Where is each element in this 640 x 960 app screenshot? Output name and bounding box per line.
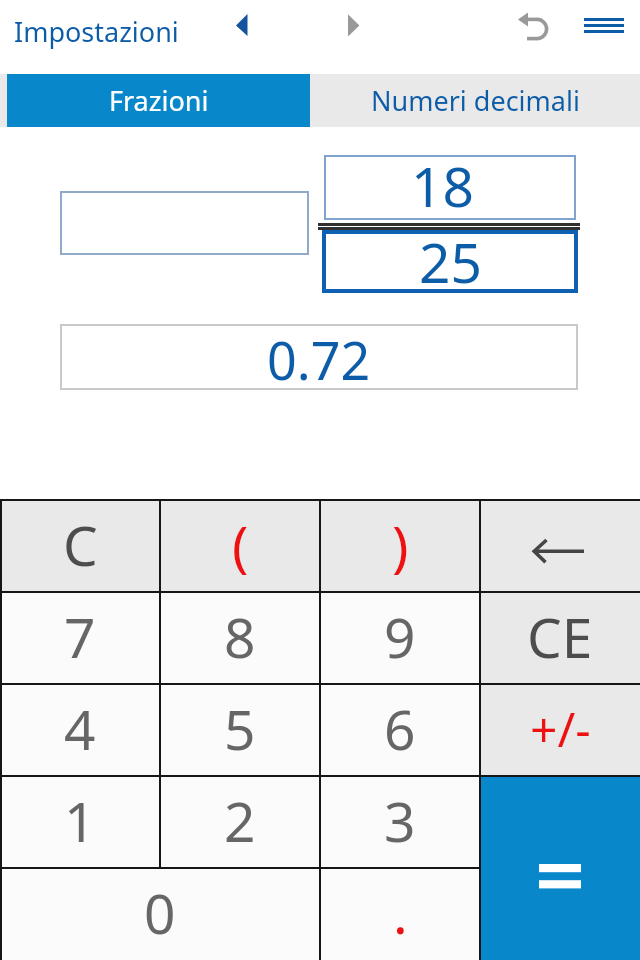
staticText: 5 <box>224 691 256 766</box>
staticText: 8 <box>224 599 256 674</box>
button[interactable]: 4 <box>0 684 160 776</box>
staticText: CE <box>527 599 593 674</box>
button[interactable]: C <box>0 500 160 592</box>
button[interactable]: 2 <box>160 776 320 868</box>
staticText: ) <box>392 507 409 582</box>
staticText: 1 <box>64 783 96 858</box>
button[interactable]: 18 <box>324 155 576 220</box>
staticText: 0.72 <box>267 324 371 390</box>
button[interactable]: . <box>320 868 480 960</box>
staticText: 4 <box>64 691 96 766</box>
button[interactable] <box>480 776 640 960</box>
button[interactable]: CE <box>480 592 640 684</box>
staticText: . <box>393 875 408 950</box>
button[interactable] <box>510 4 554 52</box>
button[interactable]: +/- <box>480 684 640 776</box>
staticText: Frazioni <box>109 82 209 119</box>
staticText: Numeri decimali <box>371 82 580 119</box>
button[interactable] <box>480 500 640 592</box>
staticText: 7 <box>64 599 96 674</box>
button[interactable]: 7 <box>0 592 160 684</box>
button[interactable]: Impostazioni <box>0 0 225 62</box>
button[interactable]: Numeri decimali <box>310 74 640 127</box>
button[interactable]: 8 <box>160 592 320 684</box>
staticText: Impostazioni <box>14 13 179 50</box>
staticText: 2 <box>224 783 256 858</box>
button[interactable] <box>60 191 309 255</box>
button[interactable]: 9 <box>320 592 480 684</box>
button[interactable] <box>578 10 630 44</box>
button[interactable] <box>226 6 262 50</box>
staticText: +/- <box>530 696 591 761</box>
staticText: 0 <box>144 875 176 950</box>
button[interactable]: ( <box>160 500 320 592</box>
staticText: 6 <box>384 691 416 766</box>
button[interactable]: 25 <box>322 230 578 293</box>
button[interactable]: 1 <box>0 776 160 868</box>
staticText: C <box>63 507 98 582</box>
staticText: 9 <box>384 599 416 674</box>
button[interactable]: Frazioni <box>7 74 310 127</box>
button[interactable]: 3 <box>320 776 480 868</box>
button[interactable]: ) <box>320 500 480 592</box>
button[interactable] <box>338 6 374 50</box>
staticText: 3 <box>384 783 416 858</box>
button[interactable]: 0.72 <box>60 324 578 390</box>
button[interactable]: 5 <box>160 684 320 776</box>
staticText: 25 <box>419 224 482 287</box>
button[interactable]: 6 <box>320 684 480 776</box>
button[interactable]: 0 <box>0 868 320 960</box>
staticText: ( <box>232 507 249 582</box>
staticText: 18 <box>411 148 474 213</box>
